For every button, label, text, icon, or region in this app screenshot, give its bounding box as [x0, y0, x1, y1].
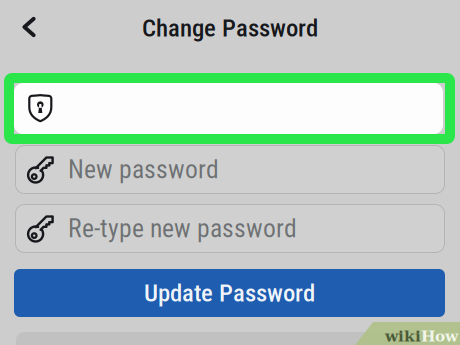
- button[interactable]: Update Password: [14, 269, 445, 317]
- button[interactable]: Back: [5, 7, 53, 47]
- staticText: Change Password: [142, 13, 318, 43]
- staticText: wiki: [385, 327, 421, 345]
- button[interactable]: Re-type new password: [15, 204, 445, 253]
- staticText: Update Password: [144, 278, 315, 308]
- staticText: New password: [68, 154, 219, 184]
- button[interactable]: [14, 83, 443, 134]
- staticText: How: [421, 327, 458, 345]
- staticText: Re-type new password: [68, 213, 297, 243]
- button[interactable]: New password: [15, 145, 445, 194]
